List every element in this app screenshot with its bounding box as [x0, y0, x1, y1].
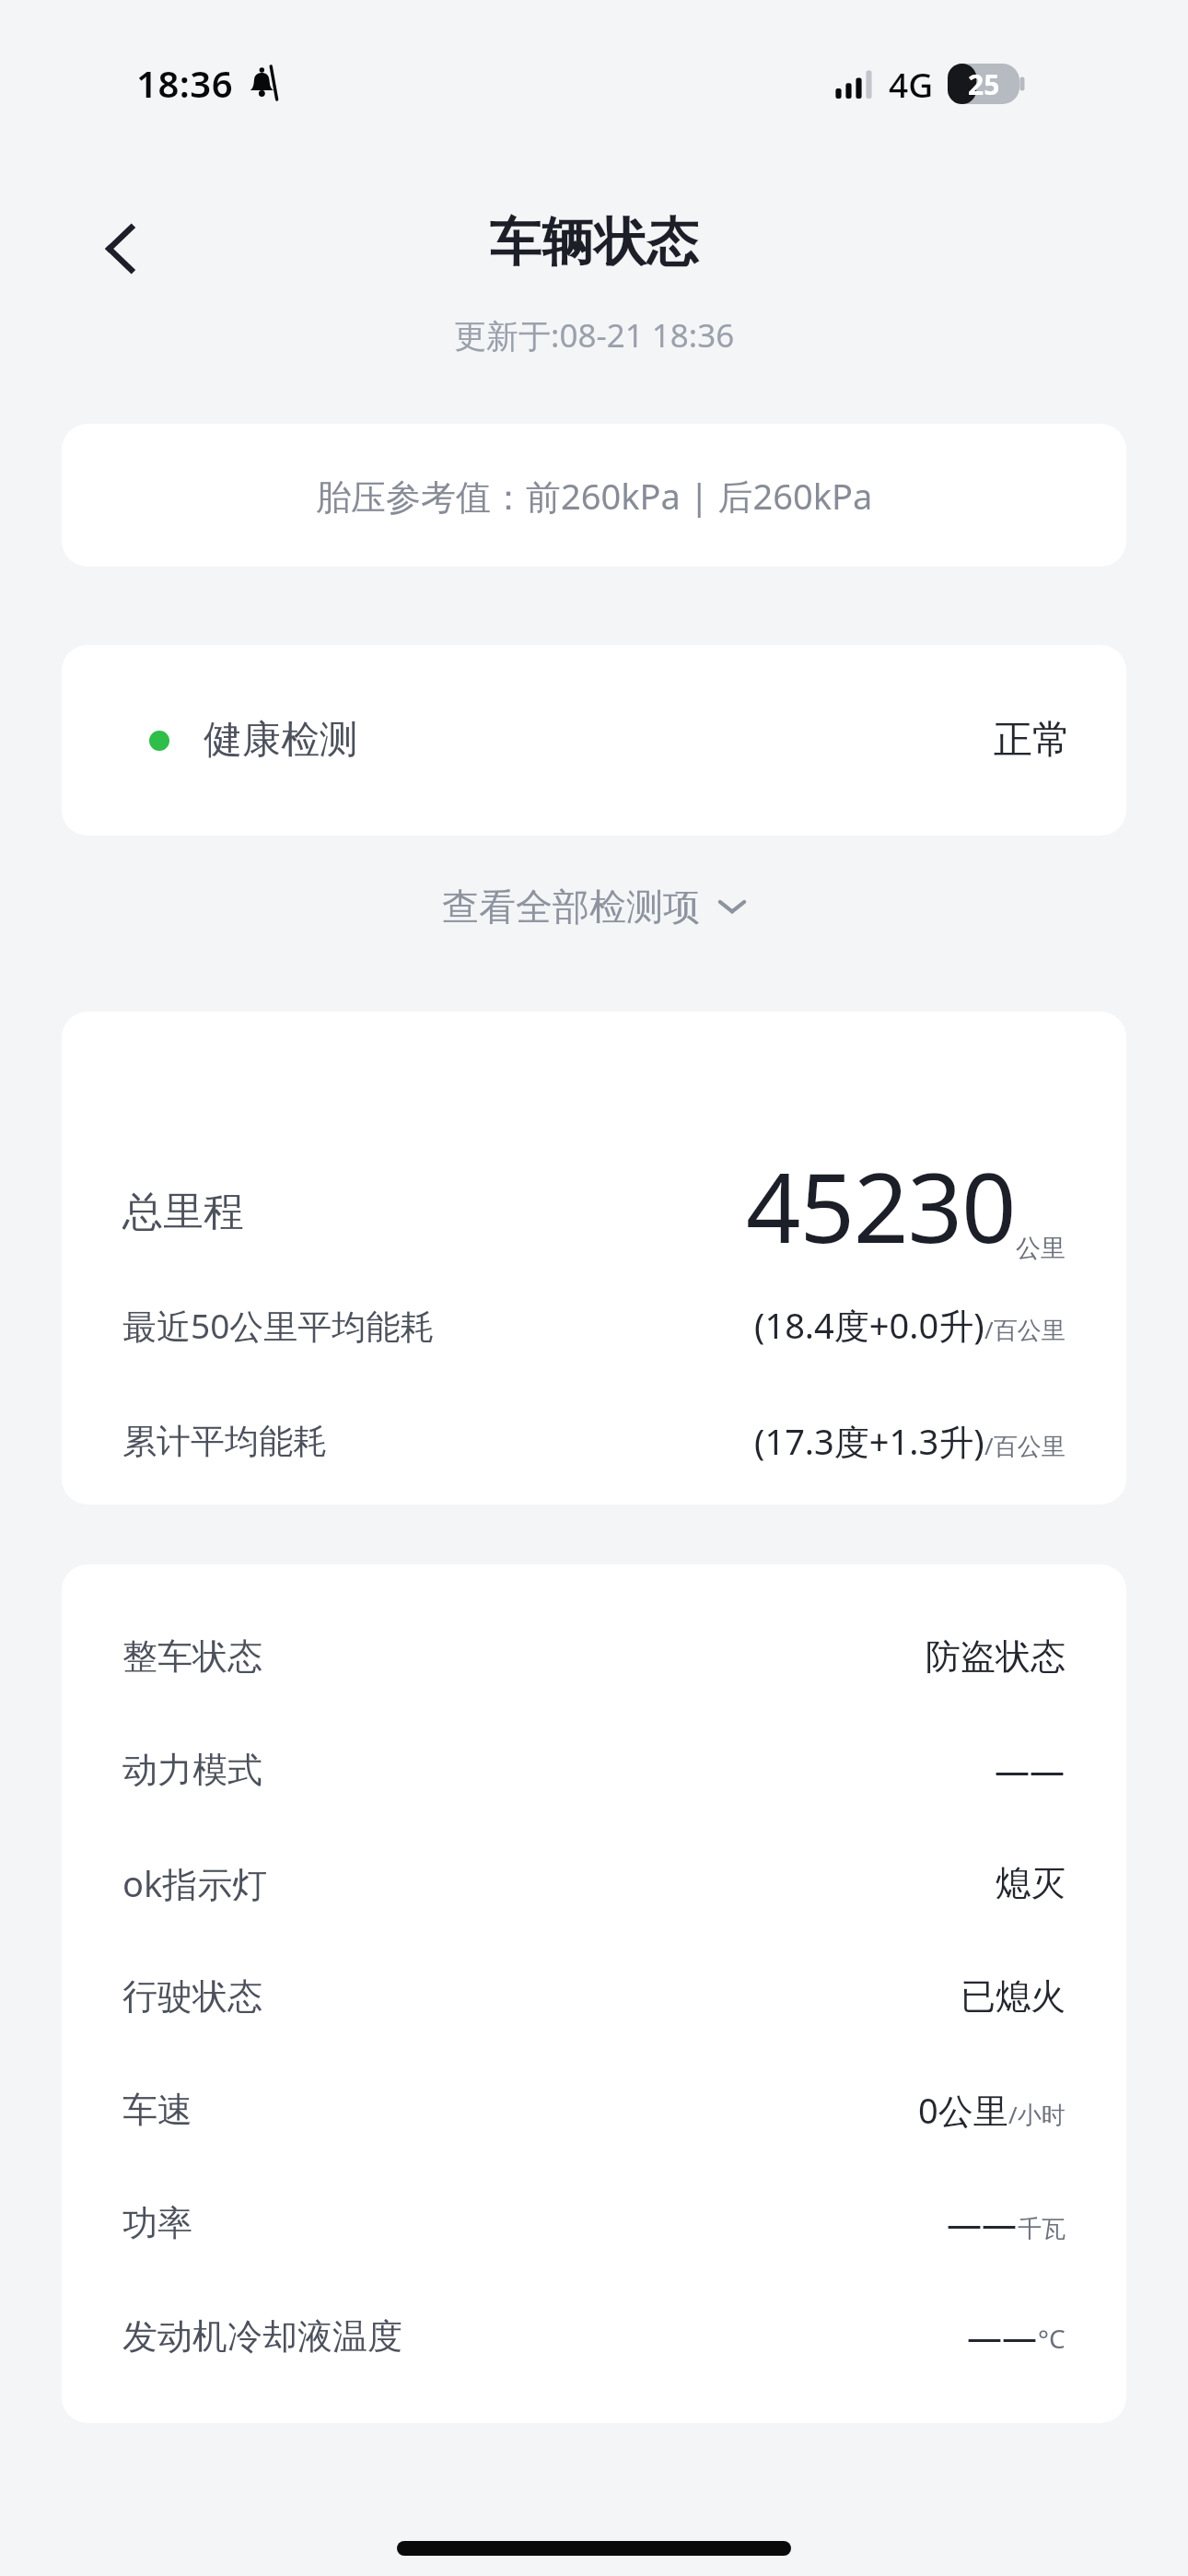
staticText: 功率 [122, 2201, 192, 2245]
staticText: —— [967, 2313, 1038, 2360]
button[interactable]: 胎压参考值：前260kPa | 后260kPa [62, 424, 1126, 567]
button[interactable]: 发动机冷却液温度 [62, 2279, 1126, 2393]
staticText: /小时 [1008, 2098, 1066, 2131]
staticText: 千瓦 [1018, 2214, 1066, 2244]
button[interactable]: 车速 [62, 2053, 1126, 2166]
staticText: °C [1038, 2321, 1066, 2356]
staticText: —— [947, 2199, 1018, 2247]
staticText: 累计平均能耗 [122, 1420, 327, 1463]
staticText: 整车状态 [122, 1634, 262, 1679]
staticText: 0公里 [918, 2086, 1008, 2134]
staticText: 健康检测 [204, 716, 358, 765]
staticText: 最近50公里平均能耗 [122, 1302, 435, 1349]
staticText: (17.3度+1.3升) [754, 1417, 984, 1465]
staticText: 胎压参考值：前260kPa | 后260kPa [316, 472, 873, 520]
button[interactable]: 总里程 [62, 1012, 1126, 1505]
staticText: —— [995, 1746, 1066, 1794]
staticText: 45230 [746, 1141, 1016, 1271]
staticText: 查看全部检测项 [442, 884, 700, 930]
staticText: /百公里 [984, 1429, 1066, 1462]
staticText: 公里 [1016, 1233, 1066, 1264]
staticText: 4G [889, 61, 934, 107]
staticText: 动力模式 [122, 1748, 262, 1792]
button[interactable]: 查看全部检测项 [420, 871, 768, 943]
staticText: ok指示灯 [122, 1859, 268, 1907]
button[interactable]: ok指示灯 [62, 1826, 1126, 1939]
staticText: 总里程 [122, 1187, 244, 1237]
staticText: 25 [968, 65, 1000, 103]
staticText: 车速 [122, 2088, 192, 2132]
staticText: 更新于:08-21 18:36 [454, 313, 735, 357]
staticText: 正常 [994, 716, 1071, 765]
button[interactable]: 整车状态 [62, 1599, 1126, 1713]
button[interactable]: 动力模式 [62, 1713, 1126, 1826]
staticText: 已熄火 [961, 1974, 1066, 2019]
staticText: 18:36 [136, 58, 234, 108]
staticText: 行驶状态 [122, 1974, 262, 2019]
button[interactable]: 功率 [62, 2166, 1126, 2279]
staticText: 车辆状态 [489, 210, 699, 275]
button[interactable]: 健康检测 [62, 645, 1126, 836]
staticText: (18.4度+0.0升) [754, 1301, 984, 1349]
staticText: /百公里 [984, 1313, 1066, 1346]
staticText: 熄灭 [996, 1861, 1066, 1905]
button[interactable]: 行驶状态 [62, 1939, 1126, 2053]
staticText: 防盗状态 [926, 1634, 1066, 1679]
staticText: 发动机冷却液温度 [122, 2314, 402, 2359]
button[interactable]: Back [66, 195, 173, 302]
